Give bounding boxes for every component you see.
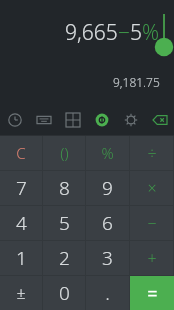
button[interactable]: 1 <box>0 241 42 275</box>
button[interactable]: Scientific <box>58 105 87 135</box>
staticText: − <box>118 18 130 47</box>
button[interactable]: % <box>86 136 129 170</box>
button[interactable]: − <box>130 206 173 240</box>
button[interactable]: 4 <box>0 206 42 240</box>
staticText: 8 <box>59 175 70 201</box>
staticText: 7 <box>16 175 27 201</box>
staticText: 0 <box>59 280 70 306</box>
staticText: 3 <box>102 245 113 271</box>
button[interactable]: 7 <box>0 171 42 205</box>
button[interactable]: 5 <box>43 206 85 240</box>
staticText: 4 <box>16 210 27 236</box>
staticText: % <box>142 18 160 47</box>
button[interactable]: 2 <box>43 241 85 275</box>
staticText: () <box>60 143 69 163</box>
staticText: C <box>16 143 26 163</box>
staticText: × <box>147 177 157 199</box>
staticText: 5 <box>59 210 70 236</box>
staticText: % <box>101 143 114 163</box>
button[interactable]: Keyboard <box>29 105 58 135</box>
button[interactable]: 3 <box>86 241 129 275</box>
staticText: 1 <box>16 245 27 271</box>
button[interactable]: . <box>86 276 129 310</box>
button[interactable]: × <box>130 171 173 205</box>
button[interactable]: () <box>43 136 85 170</box>
staticText: 2 <box>59 245 70 271</box>
button[interactable]: 9 <box>86 171 129 205</box>
staticText: = <box>147 281 158 306</box>
button[interactable]: ÷ <box>130 136 173 170</box>
staticText: 5 <box>130 18 142 47</box>
button[interactable]: + <box>130 241 173 275</box>
staticText: − <box>147 212 157 234</box>
button[interactable]: 6 <box>86 206 129 240</box>
button[interactable]: Currency <box>87 105 116 135</box>
staticText: ± <box>16 282 26 304</box>
button[interactable]: = <box>130 276 174 310</box>
button[interactable]: Settings <box>116 105 145 135</box>
staticText: 9 <box>102 175 113 201</box>
button[interactable]: 0 <box>43 276 85 310</box>
button[interactable]: C <box>0 136 42 170</box>
staticText: + <box>147 247 157 269</box>
staticText: 9,665 <box>65 18 118 47</box>
button[interactable]: Backspace <box>145 105 174 135</box>
staticText: ÷ <box>147 142 157 164</box>
button[interactable]: 8 <box>43 171 85 205</box>
staticText: 9,181.75 <box>113 74 160 90</box>
button[interactable]: ± <box>0 276 42 310</box>
button[interactable]: History <box>0 105 29 135</box>
staticText: . <box>105 280 110 306</box>
staticText: 6 <box>102 210 113 236</box>
